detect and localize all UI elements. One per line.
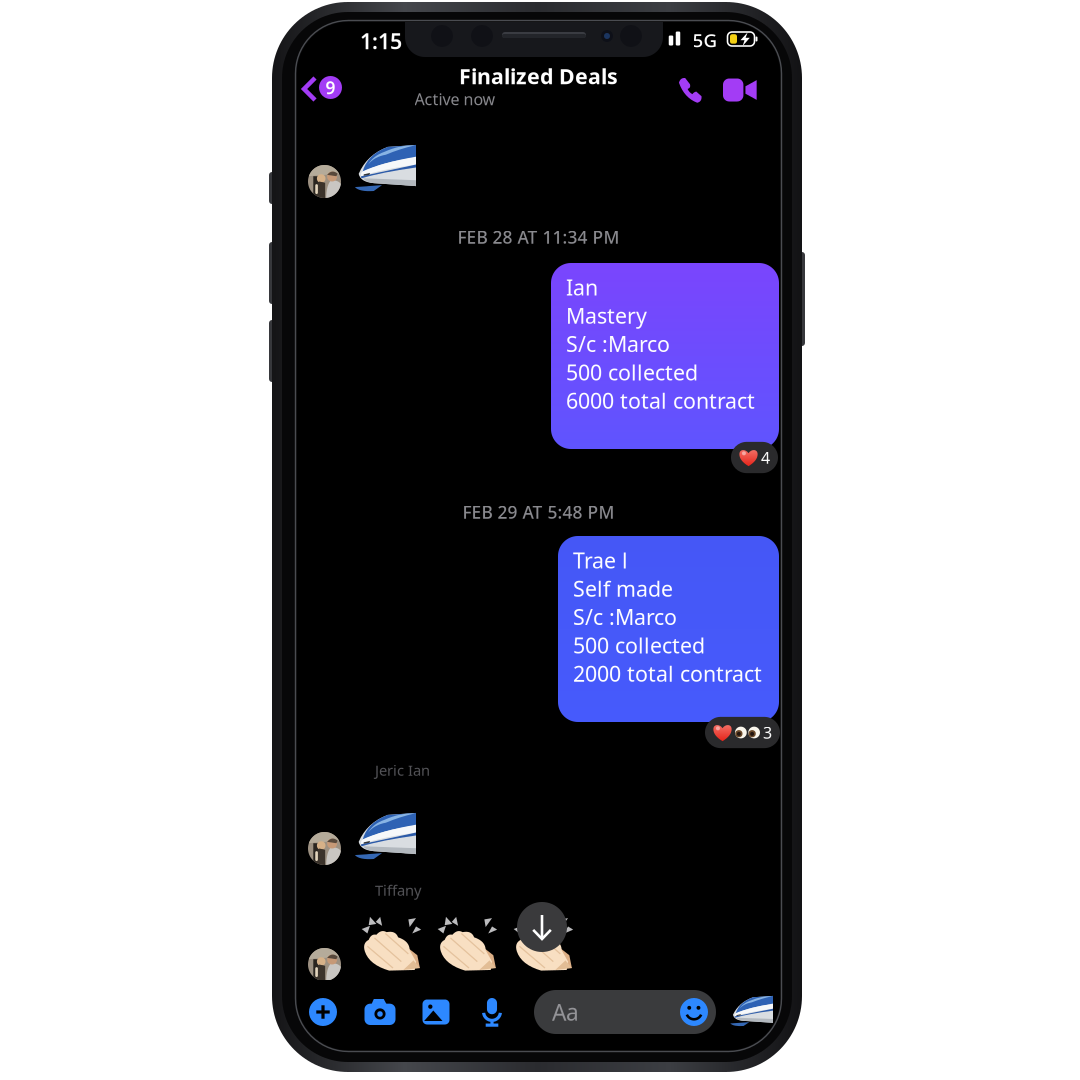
- button[interactable]: Photos: [410, 986, 462, 1038]
- staticText: S/c :Marco: [566, 330, 670, 358]
- staticText: Self made: [573, 574, 673, 603]
- button[interactable]: Video call: [718, 68, 762, 112]
- staticText: 2000 total contract: [573, 659, 762, 688]
- staticText: 1:15: [360, 27, 402, 55]
- button[interactable]: More options: [297, 986, 349, 1038]
- staticText: Tiffany: [375, 880, 421, 900]
- button[interactable]: Send a sticker: [726, 992, 776, 1028]
- staticText: 500 collected: [573, 631, 705, 659]
- staticText: 3: [763, 722, 772, 743]
- staticText: FEB 28 AT 11:34 PM: [457, 225, 619, 248]
- staticText: FEB 29 AT 5:48 PM: [462, 500, 614, 523]
- staticText: Trae l: [573, 546, 628, 574]
- button[interactable]: Audio call: [668, 68, 712, 112]
- staticText: Aa: [552, 997, 579, 1027]
- staticText: 6000 total contract: [566, 386, 755, 415]
- button[interactable]: Camera: [354, 986, 406, 1038]
- staticText: 9: [325, 76, 335, 99]
- button[interactable]: Aa: [534, 990, 716, 1034]
- staticText: 4: [761, 447, 770, 468]
- staticText: Mastery: [566, 301, 647, 330]
- staticText: 5G: [692, 28, 717, 52]
- staticText: S/c :Marco: [573, 603, 677, 631]
- staticText: Finalized Deals: [459, 62, 618, 90]
- staticText: Ian: [566, 273, 598, 301]
- button[interactable]: Back: [297, 70, 351, 118]
- button[interactable]: Voice message: [466, 986, 518, 1038]
- staticText: 500 collected: [566, 358, 698, 386]
- staticText: Active now: [414, 88, 495, 110]
- staticText: Jeric Ian: [375, 760, 430, 780]
